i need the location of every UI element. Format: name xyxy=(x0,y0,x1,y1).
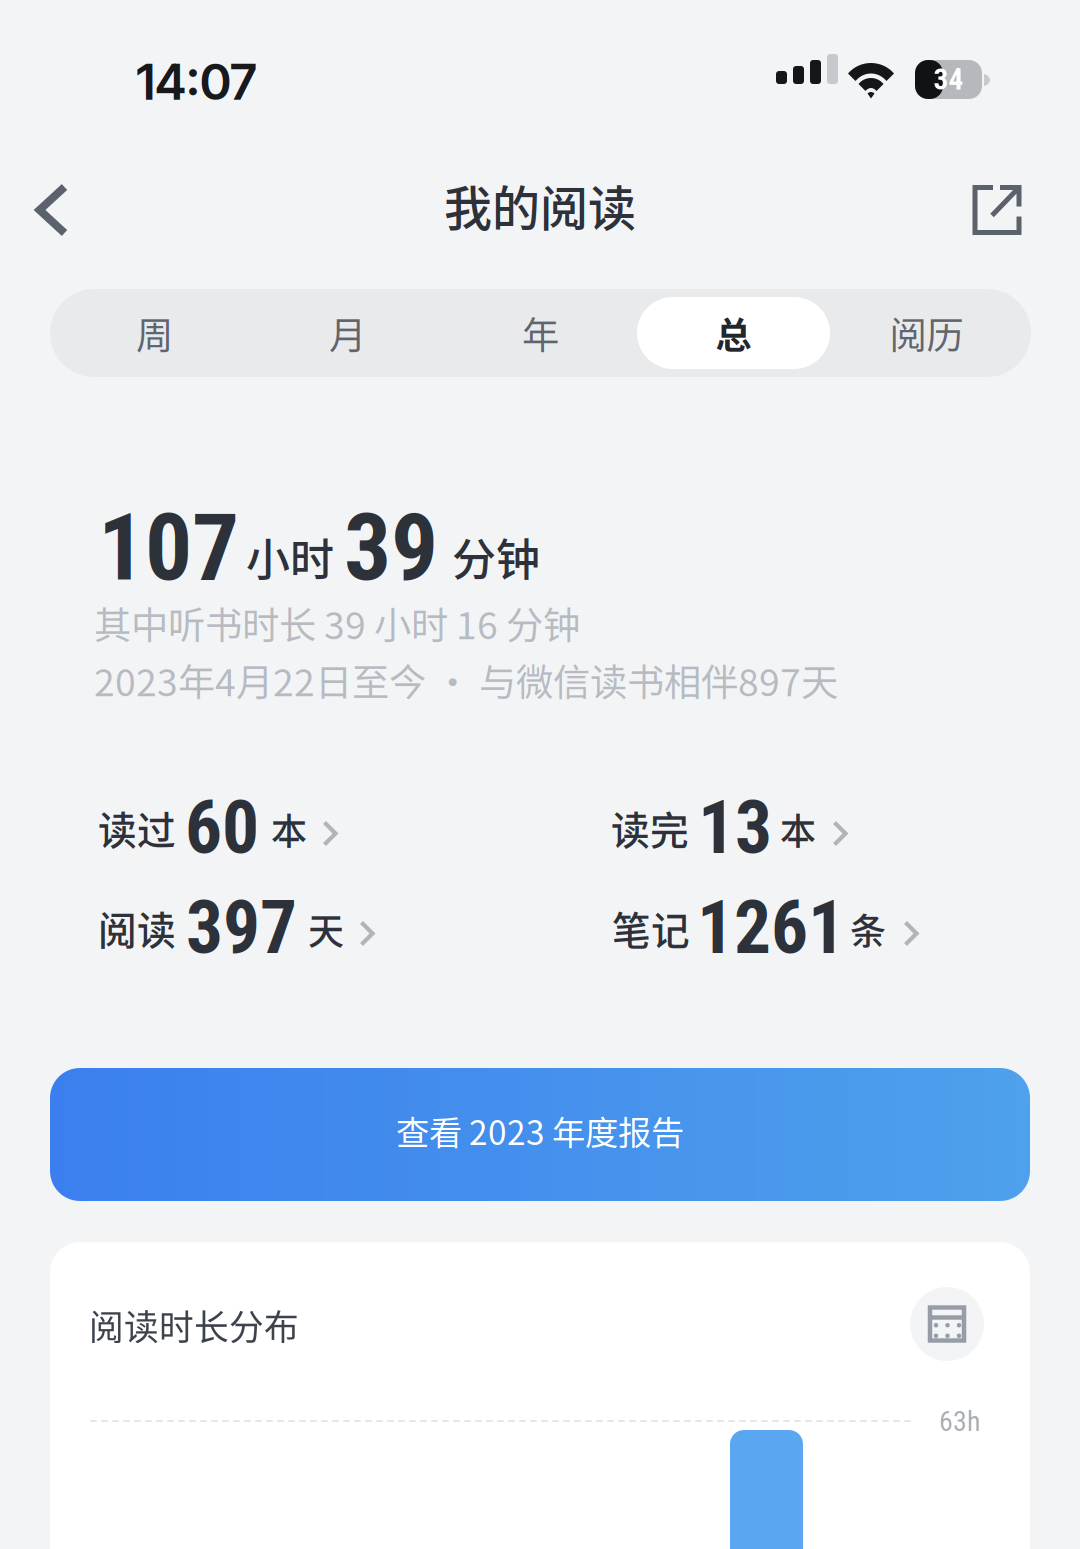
staticText: 年 xyxy=(522,306,559,360)
staticText: 39 xyxy=(344,493,438,602)
button[interactable]: Share xyxy=(945,162,1049,258)
staticText: 月 xyxy=(329,306,366,360)
button[interactable]: 查看 2023 年度报告 xyxy=(50,1068,1030,1201)
button[interactable]: 笔记 xyxy=(612,899,933,959)
staticText: 本 xyxy=(271,803,307,855)
staticText: 读过 xyxy=(98,800,176,856)
staticText: 周 xyxy=(136,306,173,360)
staticText: 14:07 xyxy=(136,52,257,112)
staticText: 阅读时长分布 xyxy=(89,1300,299,1350)
staticText: 天 xyxy=(308,903,344,955)
staticText: 63h xyxy=(939,1405,981,1438)
staticText: 1261 xyxy=(697,885,845,971)
button[interactable]: 阅读 xyxy=(98,899,389,959)
staticText: 13 xyxy=(698,785,772,871)
staticText: 查看 2023 年度报告 xyxy=(396,1106,684,1155)
button[interactable]: 周 xyxy=(58,297,251,369)
staticText: 笔记 xyxy=(612,900,690,956)
button[interactable]: Pick date range xyxy=(910,1287,984,1361)
staticText: 107 xyxy=(98,493,239,602)
staticText: 2023年4月22日至今 · 与微信读书相伴897天 xyxy=(94,653,838,707)
staticText: 分钟 xyxy=(452,525,540,589)
button[interactable]: 阅历 xyxy=(830,297,1023,369)
button[interactable]: 总 xyxy=(637,297,830,369)
staticText: 条 xyxy=(850,903,886,955)
button[interactable]: 年 xyxy=(444,297,637,369)
staticText: 总 xyxy=(715,307,751,359)
staticText: 本 xyxy=(780,803,816,855)
staticText: 阅历 xyxy=(889,306,963,360)
staticText: 读完 xyxy=(611,800,689,856)
staticText: 397 xyxy=(186,885,297,971)
staticText: 34 xyxy=(933,62,963,97)
button[interactable]: 月 xyxy=(251,297,444,369)
staticText: 60 xyxy=(185,785,259,871)
staticText: 我的阅读 xyxy=(444,170,636,240)
button[interactable]: 读完 xyxy=(611,799,862,859)
staticText: 阅读 xyxy=(98,900,176,956)
staticText: 小时 xyxy=(246,525,334,589)
staticText: 其中听书时长 39 小时 16 分钟 xyxy=(94,596,580,650)
button[interactable]: Back xyxy=(0,162,104,258)
button[interactable]: 读过 xyxy=(98,799,352,859)
